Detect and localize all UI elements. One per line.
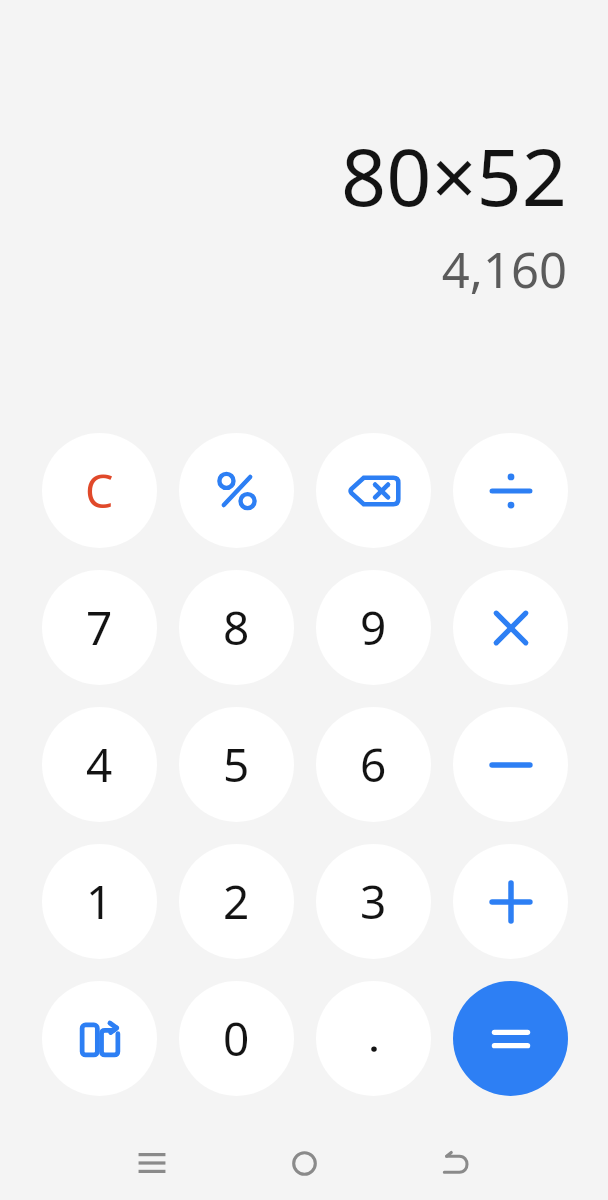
button[interactable]: Recent apps bbox=[102, 1126, 202, 1200]
staticText: 8 bbox=[223, 596, 250, 659]
staticText: 2 bbox=[223, 870, 250, 933]
staticText: 80×52 bbox=[341, 122, 567, 230]
button[interactable]: Home bbox=[254, 1126, 354, 1200]
staticText: 9 bbox=[360, 596, 387, 659]
staticText: 7 bbox=[86, 596, 113, 659]
staticText: 4,160 bbox=[441, 236, 567, 303]
button[interactable]: Divide bbox=[453, 433, 568, 548]
button[interactable]: Backspace bbox=[316, 433, 431, 548]
button[interactable]: 2 bbox=[179, 844, 294, 959]
button[interactable]: Minus bbox=[453, 707, 568, 822]
button[interactable]: Percent bbox=[179, 433, 294, 548]
button[interactable]: 5 bbox=[179, 707, 294, 822]
staticText: 5 bbox=[223, 733, 250, 796]
button[interactable]: 6 bbox=[316, 707, 431, 822]
button[interactable]: 4 bbox=[42, 707, 157, 822]
button[interactable]: 1 bbox=[42, 844, 157, 959]
button[interactable]: Back bbox=[406, 1126, 506, 1200]
staticText: 1 bbox=[86, 870, 113, 933]
button[interactable]: 8 bbox=[179, 570, 294, 685]
button[interactable]: 7 bbox=[42, 570, 157, 685]
staticText: C bbox=[85, 460, 114, 521]
button[interactable]: Equals bbox=[453, 981, 568, 1096]
button[interactable]: 0 bbox=[179, 981, 294, 1096]
staticText: 0 bbox=[223, 1007, 250, 1070]
button[interactable]: Calculator history bbox=[42, 981, 157, 1096]
staticText: 4 bbox=[86, 733, 113, 796]
button[interactable]: Clear bbox=[42, 433, 157, 548]
button[interactable]: Multiply bbox=[453, 570, 568, 685]
button[interactable]: Decimal point bbox=[316, 981, 431, 1096]
staticText: 3 bbox=[360, 870, 387, 933]
button[interactable]: Plus bbox=[453, 844, 568, 959]
button[interactable]: 9 bbox=[316, 570, 431, 685]
button[interactable]: 3 bbox=[316, 844, 431, 959]
staticText: 6 bbox=[360, 733, 387, 796]
